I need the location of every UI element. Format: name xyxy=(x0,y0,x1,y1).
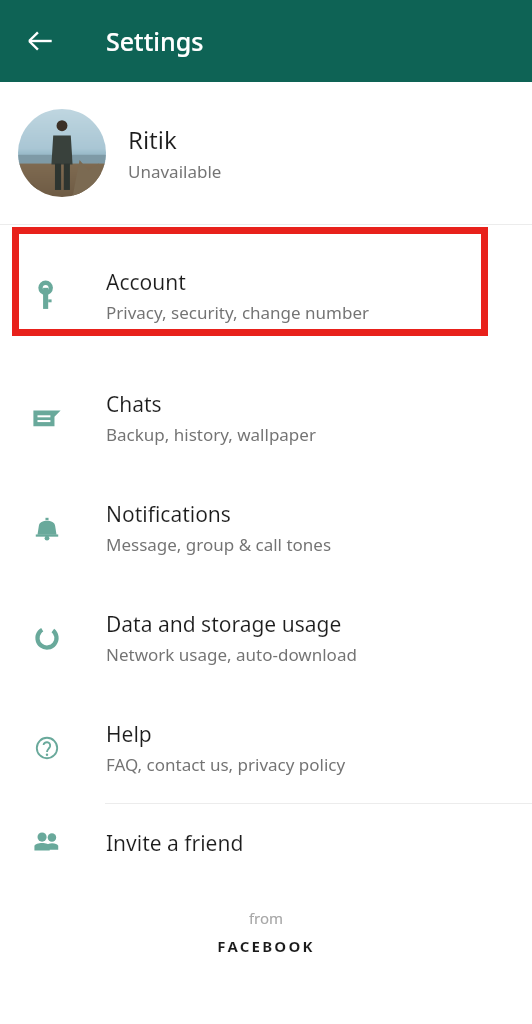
staticText: Ritik xyxy=(128,123,177,156)
staticText: Help xyxy=(106,720,152,749)
staticText: Unavailable xyxy=(128,160,222,183)
button[interactable]: Back xyxy=(14,15,66,67)
staticText: Invite a friend xyxy=(106,829,244,858)
staticText: FAQ, contact us, privacy policy xyxy=(106,753,346,776)
button[interactable]: Ritik xyxy=(0,82,532,224)
staticText: from xyxy=(0,908,532,928)
staticText: Notifications xyxy=(106,500,231,529)
staticText: Message, group & call tones xyxy=(106,533,332,556)
button[interactable]: Help xyxy=(0,693,532,803)
staticText: Privacy, security, change number xyxy=(106,301,370,324)
staticText: Network usage, auto-download xyxy=(106,643,357,666)
staticText: Chats xyxy=(106,390,162,419)
button[interactable]: Notifications xyxy=(0,473,532,583)
button[interactable]: Invite a friend xyxy=(0,804,532,882)
button[interactable]: Chats xyxy=(0,363,532,473)
staticText: Settings xyxy=(106,24,204,58)
button[interactable]: Data and storage usage xyxy=(0,583,532,693)
staticText: Account xyxy=(106,268,186,297)
staticText: Backup, history, wallpaper xyxy=(106,423,316,446)
button[interactable]: Account xyxy=(0,241,532,351)
staticText: Data and storage usage xyxy=(106,610,342,639)
staticText: FACEBOOK xyxy=(0,936,532,956)
